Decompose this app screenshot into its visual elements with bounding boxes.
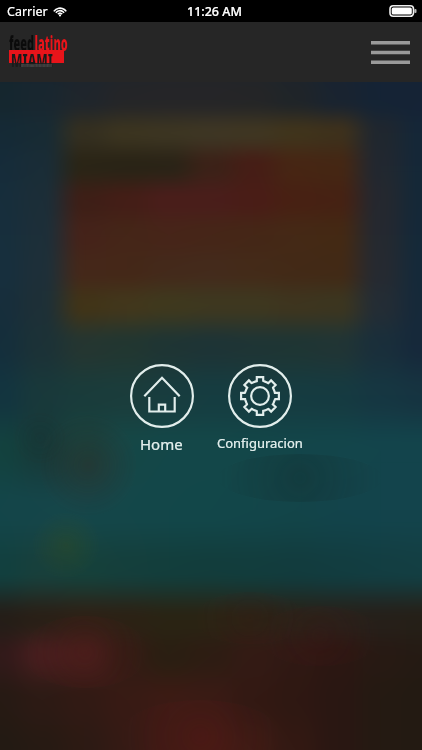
other: Home: [130, 364, 194, 428]
button[interactable]: feedlatino MIAMI: [9, 30, 65, 74]
other: Configuracion: [228, 364, 292, 428]
button[interactable]: Configuracion: [211, 364, 309, 452]
staticText: Home: [140, 434, 183, 454]
button[interactable]: Home: [113, 364, 210, 454]
staticText: latino: [34, 29, 68, 58]
button[interactable]: Menu: [370, 38, 410, 66]
staticText: Configuracion: [217, 434, 303, 452]
staticText: MIAMI: [11, 48, 53, 73]
staticText: 11:26 AM: [187, 3, 242, 20]
staticText: feed: [9, 29, 34, 58]
staticText: Carrier: [7, 3, 48, 20]
